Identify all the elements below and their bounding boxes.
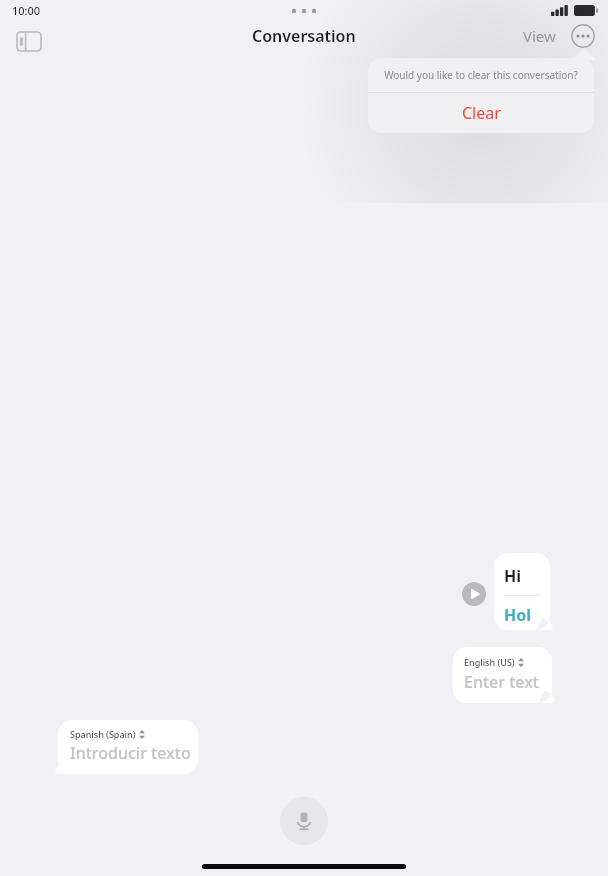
staticText: View bbox=[523, 26, 556, 46]
button[interactable]: English (US) bbox=[453, 647, 552, 703]
button[interactable]: Record voice bbox=[280, 797, 328, 845]
staticText: 10:00 bbox=[12, 3, 41, 18]
staticText: Hi bbox=[504, 565, 522, 587]
staticText: Enter text bbox=[464, 671, 539, 693]
staticText: Spanish (Spain) bbox=[70, 728, 136, 740]
staticText: Would you like to clear this conversatio… bbox=[384, 68, 578, 82]
button[interactable]: Spanish (Spain) bbox=[58, 720, 198, 774]
staticText: English (US) bbox=[464, 656, 515, 668]
staticText: Introducir texto bbox=[70, 742, 191, 764]
button[interactable]: Toggle sidebar bbox=[12, 26, 46, 56]
button[interactable]: Play translation bbox=[462, 582, 486, 606]
button[interactable]: More options bbox=[568, 21, 598, 51]
staticText: Clear bbox=[462, 102, 501, 124]
staticText: Conversation bbox=[252, 25, 356, 47]
button[interactable]: View bbox=[519, 20, 560, 52]
staticText: Hola bbox=[504, 604, 540, 630]
button[interactable]: Clear bbox=[368, 93, 594, 133]
